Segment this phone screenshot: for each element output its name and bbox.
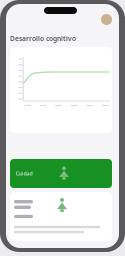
staticText: Cuidad [15, 170, 32, 177]
button[interactable]: Cuidad [10, 159, 112, 188]
staticText: Desarrollo cognitivo [10, 34, 76, 43]
button[interactable]: Profile [101, 14, 112, 25]
